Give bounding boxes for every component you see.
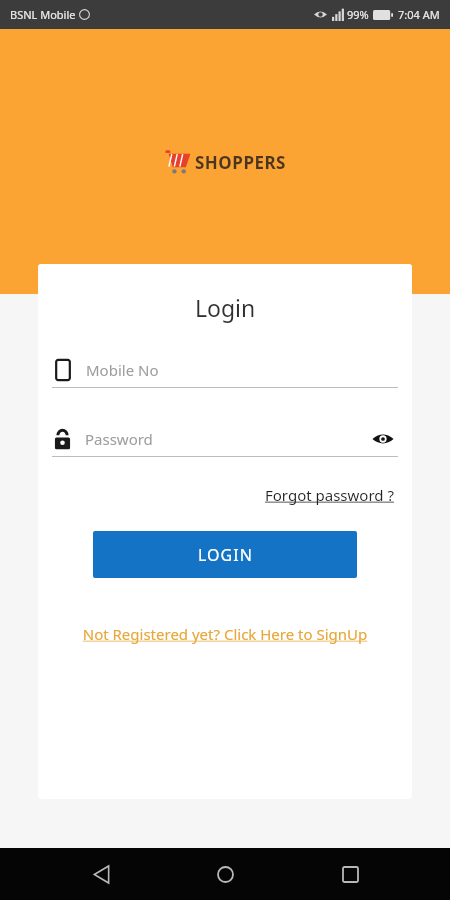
button[interactable]: LOGIN xyxy=(93,531,357,578)
button[interactable]: Mobile No xyxy=(52,353,398,387)
staticText: LOGIN xyxy=(198,544,253,566)
button[interactable]: Home xyxy=(201,850,249,898)
staticText: SHOPPERS xyxy=(195,151,286,174)
staticText: Forgot password ? xyxy=(265,485,394,505)
button[interactable]: Show password xyxy=(368,424,398,454)
staticText: Login xyxy=(195,292,256,323)
staticText: Mobile No xyxy=(86,360,159,380)
staticText: Password xyxy=(85,429,368,449)
button[interactable]: Recent apps xyxy=(326,850,374,898)
staticText: BSNL Mobile xyxy=(10,7,76,22)
staticText: 99% xyxy=(347,7,369,22)
button[interactable]: Password xyxy=(52,422,398,456)
staticText: Not Registered yet? Click Here to SignUp xyxy=(82,624,368,644)
button[interactable]: Back xyxy=(77,850,125,898)
button[interactable]: Not Registered yet? Click Here to SignUp xyxy=(82,624,368,644)
staticText: 7:04 AM xyxy=(398,7,440,22)
button[interactable]: Forgot password ? xyxy=(261,481,398,509)
